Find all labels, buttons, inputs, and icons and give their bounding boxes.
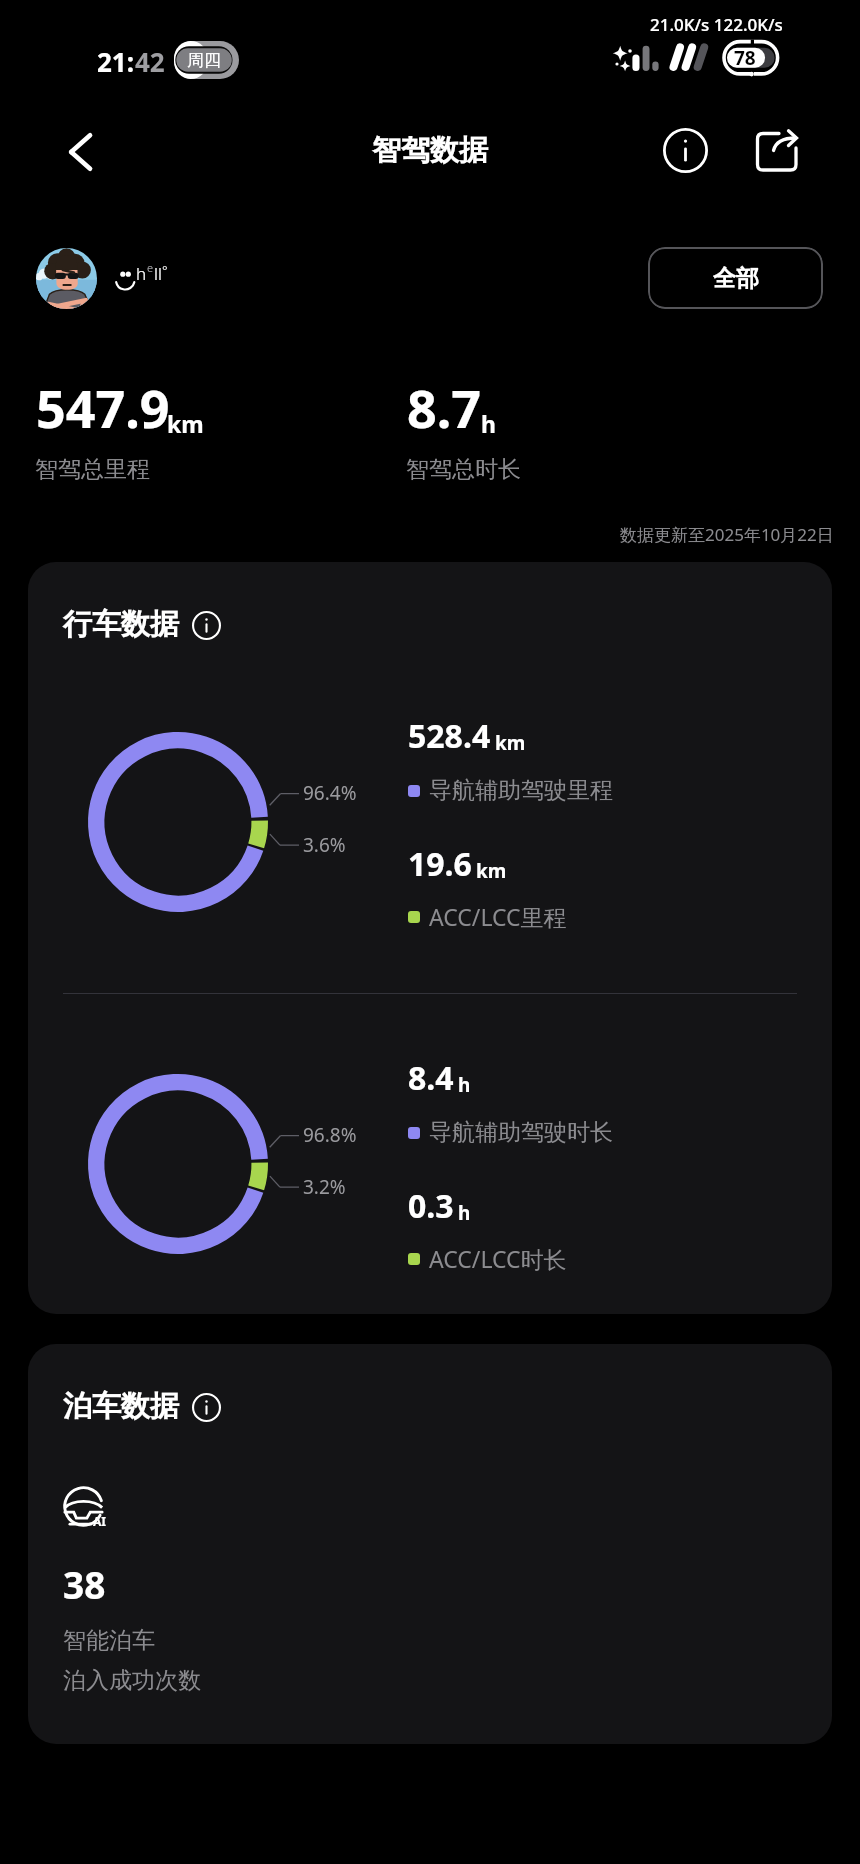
button[interactable]: Info [188, 607, 224, 643]
staticText: 智驾总时长 [406, 455, 521, 484]
staticText: h [136, 262, 147, 285]
staticText: ACC/LCC里程 [429, 901, 567, 932]
staticText: e [147, 260, 154, 275]
staticText: km [495, 730, 526, 756]
staticText: 0.3 [408, 1184, 454, 1228]
staticText: 547.9 [36, 372, 170, 443]
staticText: ACC/LCC时长 [429, 1243, 567, 1274]
staticText: km [476, 858, 507, 884]
staticText: 导航辅助驾驶里程 [429, 776, 613, 805]
button[interactable]: Back [52, 124, 108, 180]
staticText: 96.8% [303, 1122, 357, 1148]
staticText: ll [154, 262, 162, 285]
staticText: 3.2% [303, 1174, 346, 1200]
staticText: 8.7 [407, 372, 482, 443]
button[interactable]: Info [188, 1389, 224, 1425]
button[interactable]: 全部 [648, 247, 823, 309]
staticText: ° [162, 261, 168, 279]
button[interactable]: Info [657, 122, 714, 179]
staticText: 智能泊车 [63, 1626, 155, 1655]
staticText: 38 [63, 1559, 106, 1609]
staticText: 导航辅助驾驶时长 [429, 1118, 613, 1147]
staticText: AI [93, 1513, 106, 1529]
staticText: h [458, 1072, 471, 1098]
staticText: 全部 [713, 264, 759, 293]
staticText: 智驾总里程 [35, 455, 150, 484]
staticText: 周四 [187, 50, 221, 71]
staticText: 行车数据 [63, 606, 179, 643]
staticText: km [167, 408, 204, 439]
staticText: 泊入成功次数 [63, 1666, 201, 1695]
staticText: 数据更新至2025年10月22日 [620, 523, 834, 546]
staticText: 78 [734, 45, 756, 71]
staticText: 3.6% [303, 832, 346, 858]
staticText: 19.6 [408, 842, 472, 886]
staticText: h [458, 1200, 471, 1226]
staticText: h [481, 408, 496, 439]
staticText: 8.4 [408, 1056, 454, 1100]
staticText: 528.4 [408, 714, 491, 758]
staticText: 泊车数据 [63, 1388, 179, 1425]
staticText: 21: [97, 44, 135, 79]
button[interactable]: Share [750, 122, 807, 179]
staticText: 96.4% [303, 780, 357, 806]
staticText: 智驾数据 [372, 132, 488, 169]
staticText: 21.0K/s 122.0K/s [650, 13, 783, 36]
staticText: 42 [135, 44, 165, 79]
